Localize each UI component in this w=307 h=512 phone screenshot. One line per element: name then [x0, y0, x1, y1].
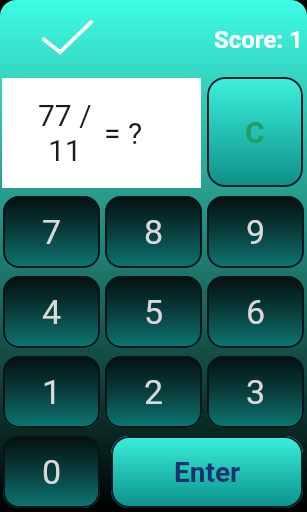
staticText: 0 [42, 452, 62, 492]
staticText: 2 [144, 372, 164, 412]
button[interactable]: 6 [207, 276, 304, 348]
staticText: 5 [144, 292, 164, 332]
button[interactable]: 1 [3, 356, 100, 428]
staticText: 7 [42, 212, 62, 252]
staticText: 3 [246, 372, 266, 412]
button[interactable] [34, 10, 102, 62]
button[interactable]: 5 [105, 276, 202, 348]
button[interactable]: 7 [3, 196, 100, 268]
button[interactable]: 4 [3, 276, 100, 348]
button[interactable]: 8 [105, 196, 202, 268]
staticText: 8 [144, 212, 164, 252]
staticText: 4 [42, 292, 62, 332]
staticText: Score: 1 [214, 26, 303, 52]
staticText: Enter [174, 456, 241, 489]
button[interactable]: C [207, 77, 303, 187]
button[interactable]: 2 [105, 356, 202, 428]
button[interactable]: 9 [207, 196, 304, 268]
button[interactable]: Enter [111, 436, 303, 508]
staticText: 11 [48, 133, 82, 168]
button[interactable]: 3 [207, 356, 304, 428]
staticText: 1 [42, 372, 62, 412]
staticText: C [245, 115, 265, 150]
button[interactable]: 0 [3, 436, 100, 508]
staticText: 9 [246, 212, 266, 252]
staticText: 77 / [38, 98, 92, 133]
staticText: = ? [104, 116, 143, 151]
staticText: 6 [246, 292, 266, 332]
